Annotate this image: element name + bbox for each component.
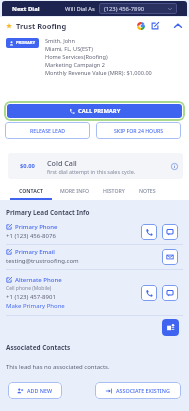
staticText: Cold Call: [47, 158, 77, 168]
staticText: Alternate Phone: [15, 276, 62, 284]
staticText: SKIP FOR 24 HOURS: [114, 127, 164, 134]
staticText: This lead has no associated contacts.: [6, 363, 110, 371]
staticText: Primary Email: [15, 248, 55, 256]
staticText: Next Dial: [12, 5, 40, 13]
staticText: Marketing Campaign 2: [45, 61, 105, 69]
staticText: CALL PRIMARY: [78, 107, 121, 115]
staticText: ADD NEW: [27, 387, 53, 394]
button[interactable]: Message: [162, 285, 178, 301]
button[interactable]: NOTES: [131, 183, 164, 198]
staticText: RELEASE LEAD: [30, 127, 66, 134]
button[interactable]: PRIMARY: [6, 38, 39, 48]
staticText: Make Primary Phone: [6, 302, 65, 310]
staticText: first dial attempt in this sales cycle.: [47, 168, 136, 175]
staticText: testing@trustroofing.com: [6, 257, 79, 265]
button[interactable]: ASSOCIATE EXISTING: [95, 382, 181, 399]
button[interactable]: ADD NEW: [8, 382, 62, 399]
staticText: PRIMARY: [16, 40, 36, 46]
staticText: Primary Phone: [15, 223, 58, 231]
button[interactable]: Info: [167, 159, 181, 173]
staticText: Monthly Revenue Value (MRR): $1,000.00: [45, 69, 152, 77]
staticText: Smith, John: [45, 37, 75, 45]
staticText: Miami, FL, US(EST): [45, 45, 93, 53]
staticText: Trust Roofing: [16, 21, 67, 31]
button[interactable]: Message: [162, 224, 178, 240]
button[interactable]: Call: [141, 285, 157, 301]
button[interactable]: Edit lead: [148, 19, 161, 32]
button[interactable]: Collapse: [170, 18, 185, 33]
staticText: NOTES: [139, 187, 156, 194]
staticText: Associated Contacts: [6, 343, 71, 352]
staticText: Will Dial As: [65, 5, 95, 13]
staticText: (123) 456-7890: [104, 5, 145, 13]
button[interactable]: RELEASE LEAD: [5, 122, 90, 139]
button[interactable]: Add contact info: [162, 319, 179, 336]
button[interactable]: Call: [141, 224, 157, 240]
staticText: +1 (123) 457-8901: [6, 293, 56, 301]
button[interactable]: Email: [162, 249, 178, 265]
staticText: Primary Lead Contact Info: [6, 208, 90, 217]
staticText: CONTACT: [19, 187, 43, 194]
staticText: MORE INFO: [60, 187, 90, 194]
button[interactable]: CALL PRIMARY: [7, 104, 182, 118]
staticText: +1 (123) 456-8076: [6, 232, 56, 240]
staticText: Home Services(Roofing): [45, 53, 108, 61]
button[interactable]: CONTACT: [10, 183, 52, 198]
button[interactable]: SKIP FOR 24 HOURS: [96, 122, 181, 139]
button[interactable]: MORE INFO: [52, 183, 97, 198]
staticText: HISTORY: [103, 187, 125, 194]
button[interactable]: (123) 456-7890: [99, 3, 177, 14]
staticText: ASSOCIATE EXISTING: [116, 387, 170, 394]
staticText: $0.00: [20, 162, 35, 170]
button[interactable]: Google search: [134, 19, 147, 32]
button[interactable]: HISTORY: [97, 183, 131, 198]
staticText: Cell phone (Mobile): [6, 285, 52, 292]
